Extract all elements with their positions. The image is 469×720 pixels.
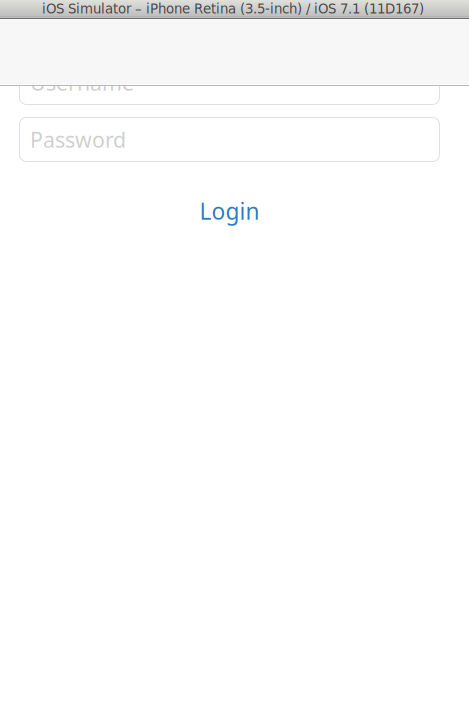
button[interactable]: Password [19,117,440,162]
staticText: iOS Simulator – iPhone Retina (3.5-inch)… [42,1,424,17]
staticText: Login [199,196,259,226]
button[interactable]: Login [164,198,294,224]
staticText: Password [30,125,126,154]
staticText: Username [30,68,134,97]
button[interactable]: Username [19,60,440,105]
